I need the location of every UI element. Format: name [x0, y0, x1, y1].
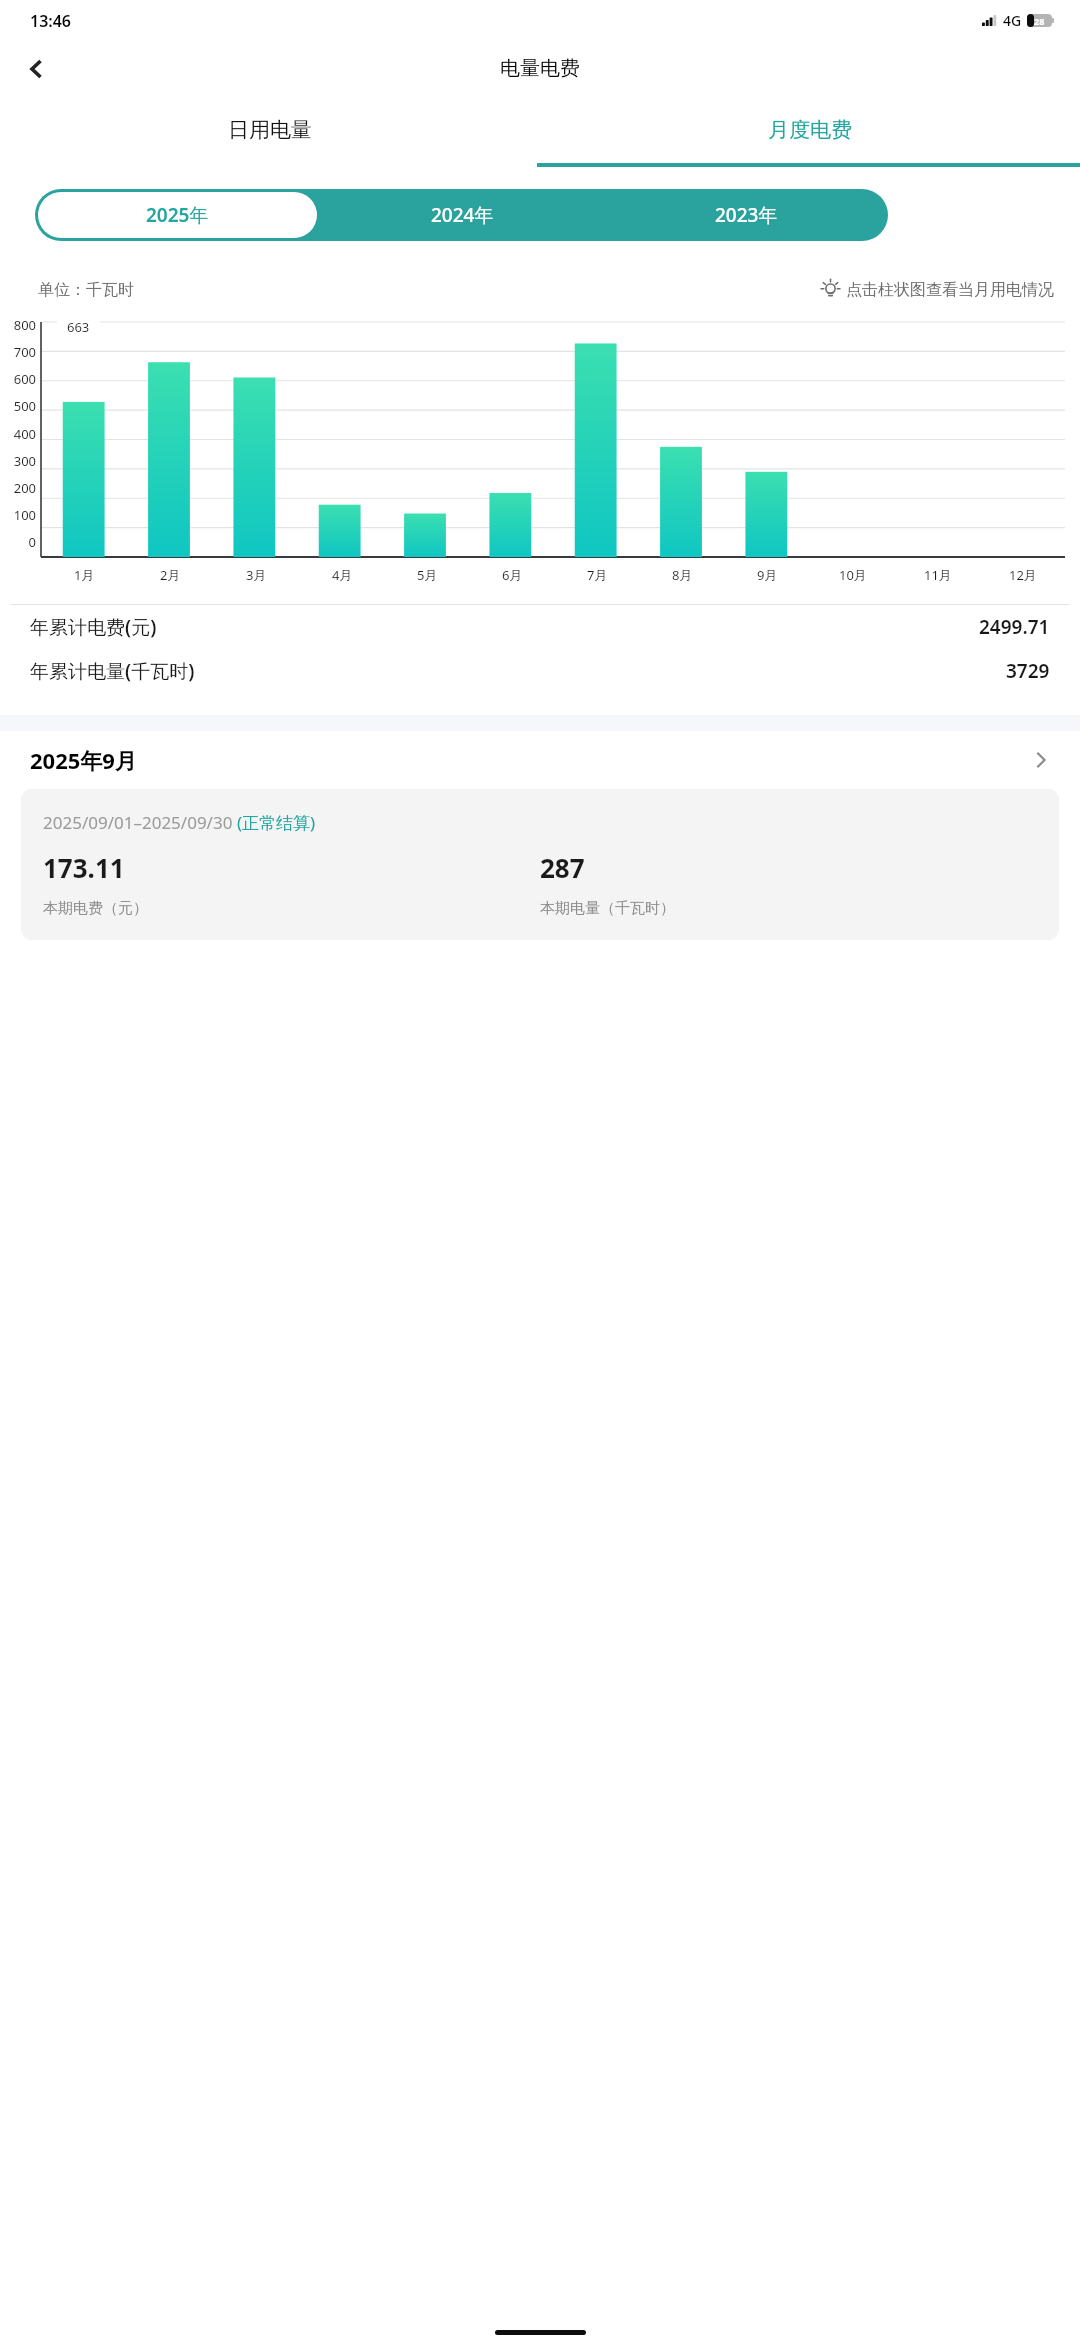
button[interactable]: 2024年 [320, 189, 604, 241]
staticText: 663 [67, 318, 90, 336]
staticText: 10月 [839, 566, 867, 584]
staticText: 2023年 [715, 202, 778, 228]
staticText: 300 [13, 452, 36, 470]
staticText: 2024年 [431, 202, 494, 228]
button[interactable]: 月度电费 [540, 100, 1080, 167]
staticText: 3729 [1006, 658, 1050, 684]
staticText: 2025年 [146, 202, 209, 228]
button[interactable]: 日用电量 [0, 100, 540, 167]
staticText: 电量电费 [500, 56, 580, 81]
staticText: 2月 [160, 566, 181, 584]
staticText: 9月 [757, 566, 778, 584]
staticText: 12月 [1009, 566, 1037, 584]
staticText: 2499.71 [979, 614, 1050, 640]
button[interactable]: 2025年9月 [0, 731, 1080, 789]
staticText: 4月 [332, 566, 353, 584]
staticText: 200 [13, 479, 36, 497]
staticText: 本期电费（元） [43, 899, 148, 918]
button[interactable]: 2025年 [38, 192, 317, 238]
staticText: 600 [13, 370, 36, 388]
staticText: 0 [28, 533, 36, 551]
staticText: 173.11 [43, 850, 125, 885]
staticText: 11月 [924, 566, 952, 584]
staticText: 点击柱状图查看当月用电情况 [846, 280, 1054, 300]
staticText: 500 [13, 397, 36, 415]
staticText: 7月 [587, 566, 608, 584]
staticText: 1月 [74, 566, 95, 584]
button[interactable]: 2025/09/01–2025/09/30 [21, 789, 1059, 940]
staticText: 本期电量（千瓦时） [540, 899, 675, 918]
staticText: 3月 [246, 566, 267, 584]
staticText: 年累计电量(千瓦时) [30, 658, 195, 684]
staticText: 2025/09/01–2025/09/30 [43, 811, 237, 834]
button[interactable]: 年累计电费(元) [0, 605, 1080, 649]
staticText: 5月 [417, 566, 438, 584]
staticText: 13:46 [30, 10, 72, 32]
staticText: 年累计电费(元) [30, 614, 157, 640]
button[interactable]: Back [14, 47, 58, 91]
staticText: (正常结算) [237, 811, 316, 834]
staticText: 单位：千瓦时 [38, 280, 134, 300]
button[interactable]: 年累计电量(千瓦时) [0, 649, 1080, 693]
staticText: 月度电费 [768, 117, 852, 143]
staticText: 400 [13, 425, 36, 443]
staticText: 4G [1003, 11, 1022, 30]
staticText: 287 [540, 850, 585, 885]
other: More [1032, 751, 1050, 769]
staticText: 2025年9月 [30, 745, 137, 775]
staticText: 700 [13, 343, 36, 361]
button[interactable]: 2023年 [604, 189, 888, 241]
staticText: 6月 [502, 566, 523, 584]
staticText: 800 [13, 316, 36, 334]
staticText: 100 [13, 506, 36, 524]
staticText: 日用电量 [228, 117, 312, 143]
staticText: 28 [1034, 15, 1045, 27]
staticText: 8月 [672, 566, 693, 584]
